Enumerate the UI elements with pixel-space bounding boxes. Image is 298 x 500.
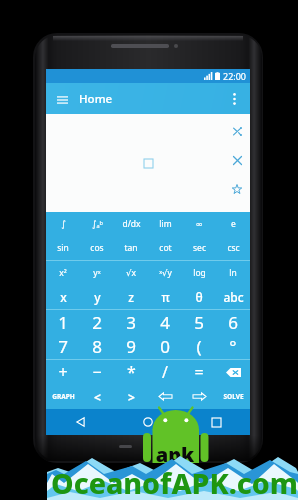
staticText: sec [193, 242, 206, 254]
staticText: 5 [194, 311, 204, 334]
staticText: 0 [160, 335, 170, 358]
staticText: 4 [160, 311, 170, 334]
staticText: ( [196, 335, 202, 358]
button[interactable]: 2 [80, 310, 114, 334]
button[interactable]: ln [216, 261, 250, 285]
button[interactable]: cos [80, 236, 114, 260]
staticText: log [193, 267, 206, 279]
staticText: ∫ [61, 219, 66, 229]
button[interactable]: z [114, 285, 148, 309]
staticText: / [162, 361, 168, 383]
staticText: SOLVE [223, 392, 244, 401]
staticText: ∞ [195, 219, 203, 229]
button[interactable]: 3 [114, 310, 148, 334]
button[interactable]: ∫ₐᵇ [80, 212, 114, 236]
button[interactable]: Backspace [216, 360, 250, 384]
button[interactable]: GRAPH [46, 384, 80, 409]
staticText: ° [229, 335, 237, 358]
button[interactable]: ∞ [182, 212, 216, 236]
staticText: 7 [58, 335, 68, 358]
staticText: cot [159, 242, 172, 254]
staticText: Home [79, 91, 113, 107]
button[interactable]: log [182, 261, 216, 285]
button[interactable]: * [114, 360, 148, 384]
staticText: csc [227, 242, 240, 254]
staticText: ∫ₐᵇ [92, 218, 103, 230]
button[interactable]: 0 [148, 334, 182, 359]
staticText: x [60, 289, 67, 305]
staticText: * [127, 361, 136, 383]
button[interactable]: Move left [148, 384, 182, 409]
button[interactable]: π [148, 285, 182, 309]
button[interactable]: − [80, 360, 114, 384]
button[interactable]: Menu [51, 88, 73, 110]
staticText: 3 [126, 311, 136, 334]
staticText: d/dx [122, 218, 141, 230]
staticText: sin [57, 242, 69, 254]
staticText: π [161, 289, 170, 305]
button[interactable]: > [114, 384, 148, 409]
staticText: apk [150, 441, 200, 468]
staticText: √x [126, 267, 136, 279]
button[interactable]: < [80, 384, 114, 409]
button[interactable]: e [216, 212, 250, 236]
staticText: 8 [92, 335, 102, 358]
staticText: tan [124, 242, 138, 254]
button[interactable]: θ [182, 285, 216, 309]
staticText: abc [223, 289, 244, 305]
button[interactable]: abc [216, 285, 250, 309]
button[interactable]: cot [148, 236, 182, 260]
button[interactable]: sin [46, 236, 80, 260]
button[interactable]: 7 [46, 334, 80, 359]
staticText: ˣ√y [159, 267, 172, 279]
button[interactable]: 8 [80, 334, 114, 359]
staticText: GRAPH [52, 392, 75, 401]
button[interactable]: Back [46, 409, 114, 435]
button[interactable]: 6 [216, 310, 250, 334]
button[interactable]: csc [216, 236, 250, 260]
staticText: 9 [126, 335, 136, 358]
button[interactable]: ( [182, 334, 216, 359]
button[interactable]: yˣ [80, 261, 114, 285]
staticText: > [128, 389, 135, 405]
staticText: yˣ [93, 267, 101, 279]
button[interactable]: Move right [182, 384, 216, 409]
button[interactable]: ° [216, 334, 250, 359]
staticText: 22:00 [223, 70, 247, 82]
staticText: lim [159, 218, 172, 230]
staticText: OceanofAPK.com [51, 464, 298, 500]
staticText: y [94, 289, 101, 305]
staticText: e [231, 218, 236, 230]
button[interactable]: sec [182, 236, 216, 260]
button[interactable]: x² [46, 261, 80, 285]
button[interactable]: Clear [228, 151, 246, 169]
button[interactable]: Recent apps [182, 409, 250, 435]
staticText: z [128, 289, 134, 305]
button[interactable]: y [80, 285, 114, 309]
button[interactable]: More options [221, 86, 247, 112]
staticText: < [94, 389, 101, 405]
staticText: θ [195, 289, 203, 305]
button[interactable]: tan [114, 236, 148, 260]
button[interactable]: = [182, 360, 216, 384]
button[interactable]: 5 [182, 310, 216, 334]
button[interactable]: / [148, 360, 182, 384]
staticText: 1 [58, 311, 68, 334]
button[interactable]: 9 [114, 334, 148, 359]
staticText: 6 [228, 311, 238, 334]
button[interactable]: Home [114, 409, 182, 435]
button[interactable]: ∫ [46, 212, 80, 236]
button[interactable]: 1 [46, 310, 80, 334]
button[interactable]: d/dx [114, 212, 148, 236]
button[interactable]: ˣ√y [148, 261, 182, 285]
button[interactable]: lim [148, 212, 182, 236]
button[interactable]: Favorite [228, 180, 246, 198]
button[interactable]: 4 [148, 310, 182, 334]
button[interactable]: + [46, 360, 80, 384]
staticText: = [194, 361, 204, 383]
staticText: + [58, 361, 68, 383]
button[interactable]: x [46, 285, 80, 309]
button[interactable]: Shuffle [228, 122, 246, 140]
button[interactable]: SOLVE [216, 384, 250, 409]
button[interactable]: √x [114, 261, 148, 285]
